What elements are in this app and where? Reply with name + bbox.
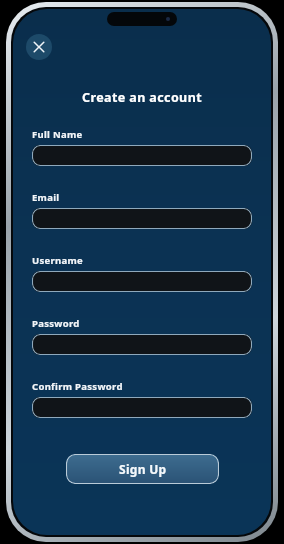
button[interactable] [32, 145, 252, 166]
staticText: Password [32, 317, 80, 330]
button[interactable]: Close [26, 34, 52, 60]
staticText: Confirm Password [32, 380, 123, 393]
staticText: Sign Up [119, 461, 167, 477]
button[interactable] [32, 397, 252, 418]
button[interactable] [32, 334, 252, 355]
button[interactable]: Sign Up [66, 454, 219, 484]
staticText: Username [32, 254, 84, 267]
staticText: Full Name [32, 128, 83, 141]
staticText: Create an account [13, 89, 271, 106]
button[interactable] [32, 271, 252, 292]
staticText: Email [32, 191, 60, 204]
button[interactable] [32, 208, 252, 229]
